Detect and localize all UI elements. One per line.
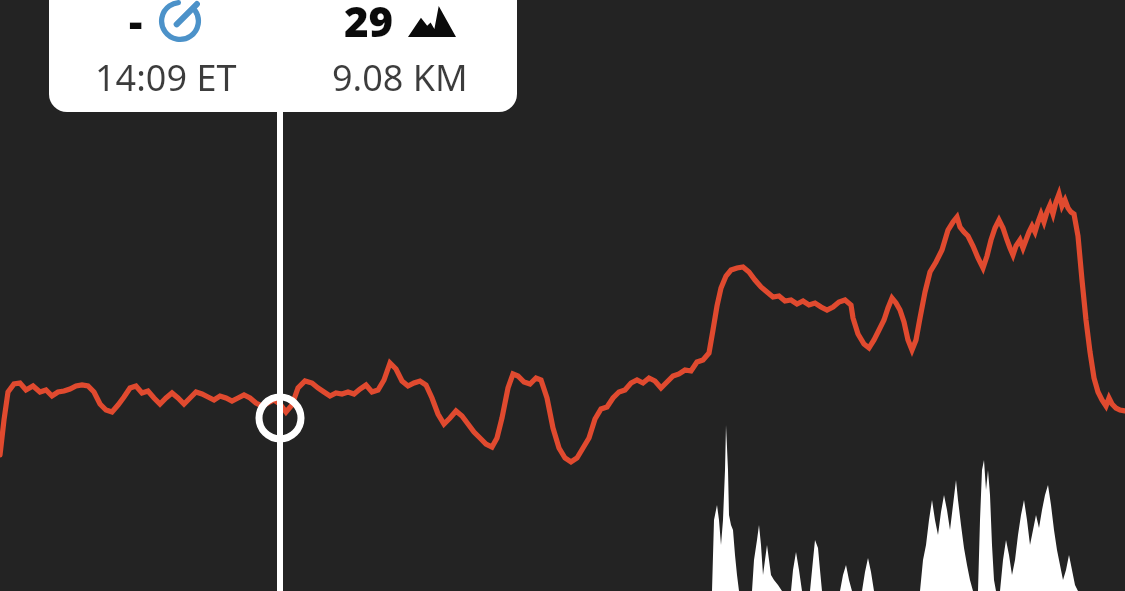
- staticText: 14:09 ET: [95, 53, 237, 102]
- staticText: -: [129, 0, 143, 49]
- button[interactable]: -: [49, 0, 517, 112]
- staticText: 9.08 KM: [332, 53, 468, 102]
- staticText: 29: [344, 0, 394, 49]
- other: Pace: [157, 0, 203, 44]
- other: Elevation: [408, 4, 456, 37]
